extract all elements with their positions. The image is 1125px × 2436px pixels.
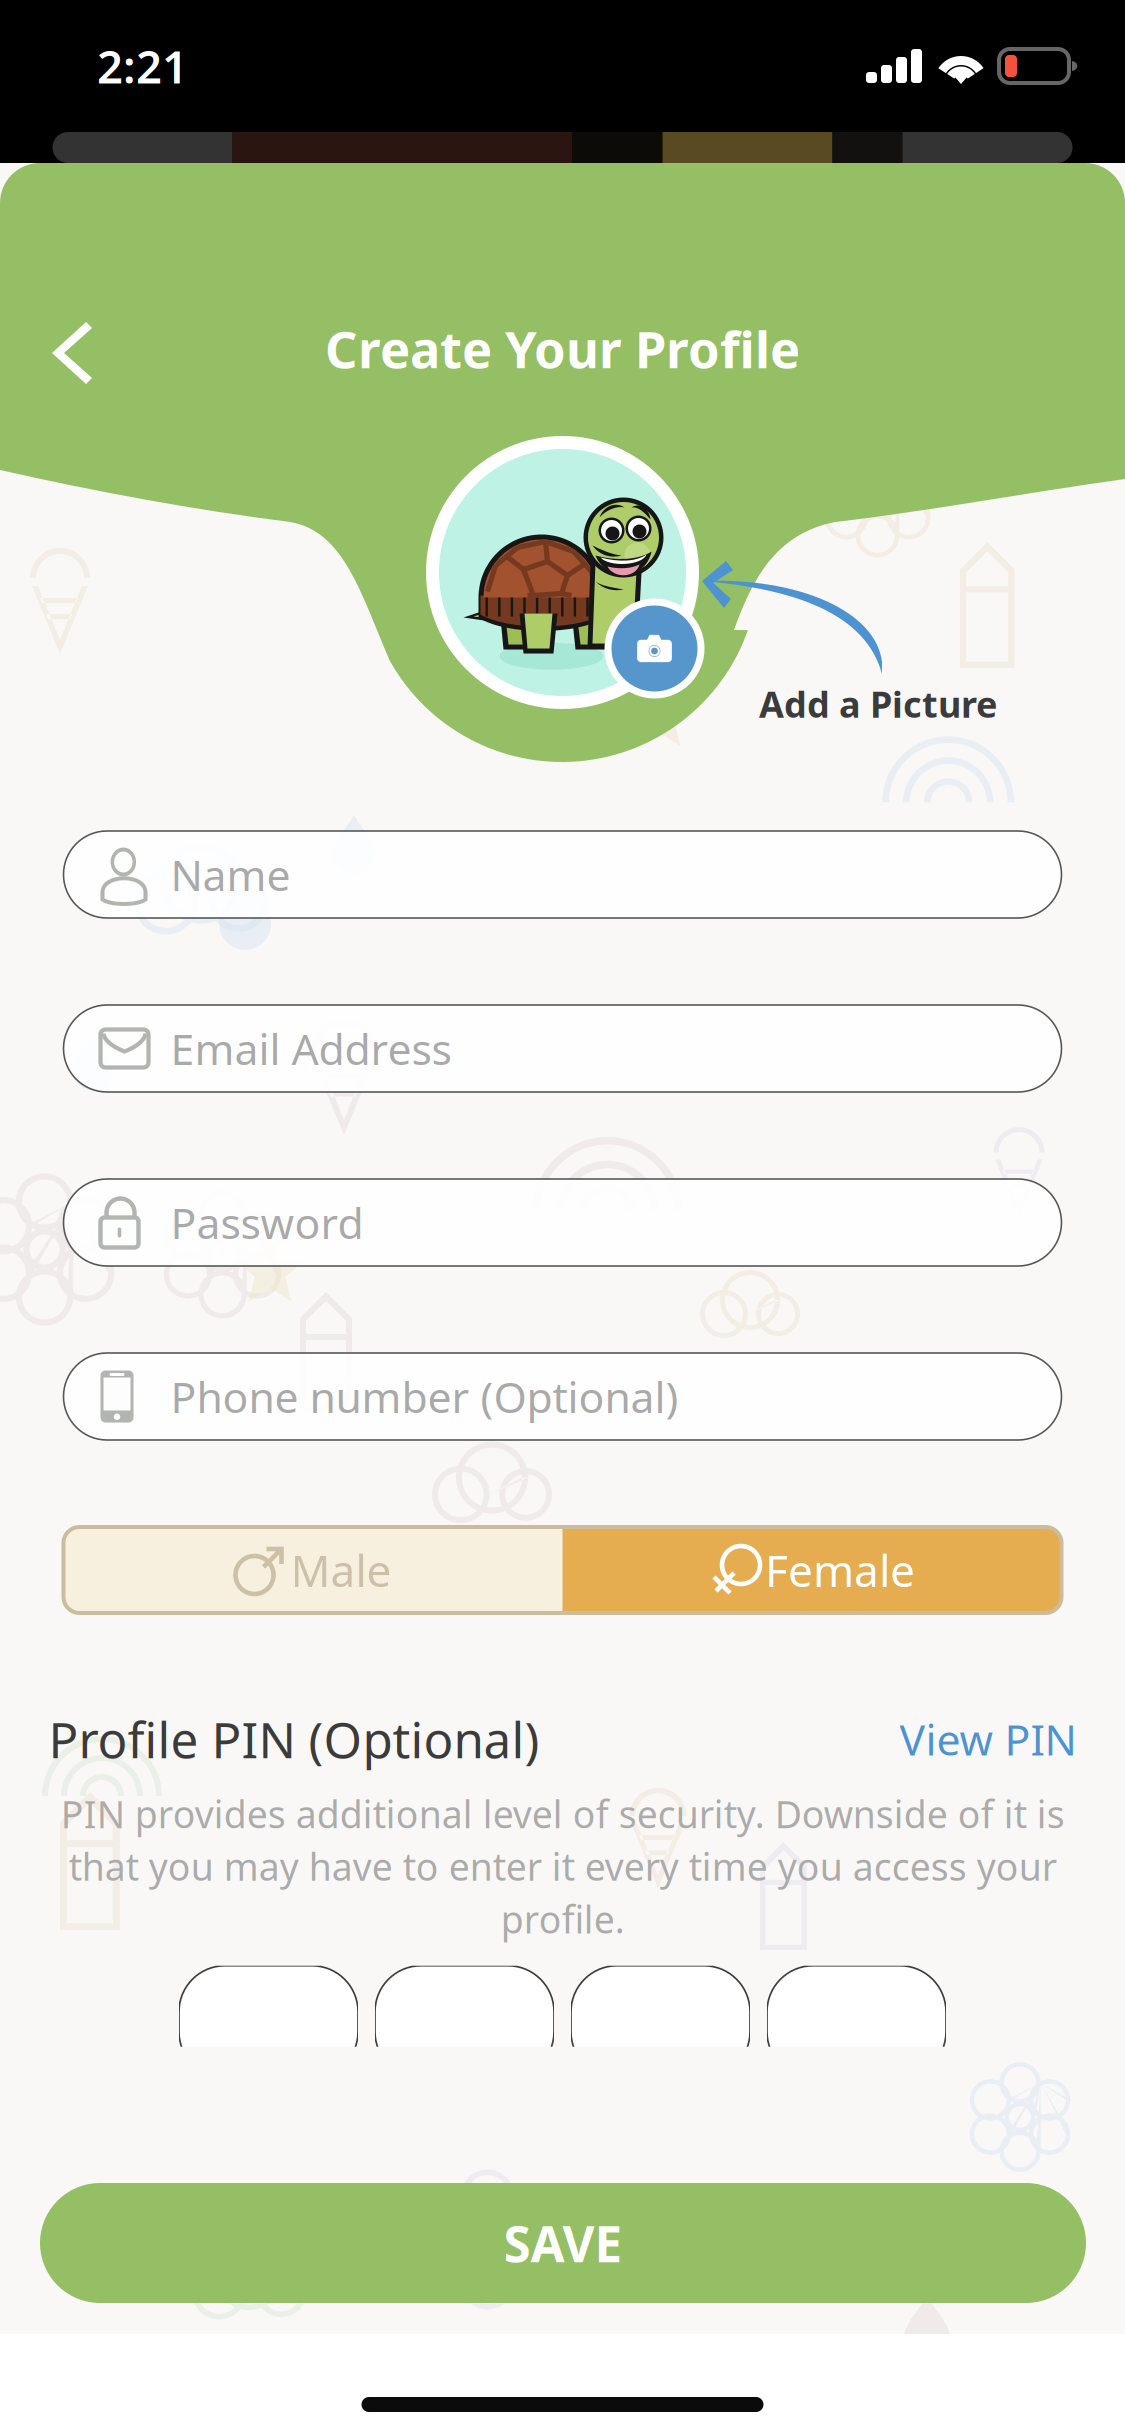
staticText: PIN provides additional level of securit… [60, 1789, 1064, 1944]
button[interactable]: PIN digit [179, 1966, 358, 2047]
staticText: Add a Picture [759, 680, 997, 728]
staticText: Email Address [170, 1020, 451, 1077]
button[interactable]: Email Address [63, 1005, 1061, 1092]
staticText: View PIN [899, 1711, 1076, 1767]
button[interactable]: View PIN [899, 1711, 1076, 1767]
button[interactable]: Male [63, 1527, 562, 1613]
button[interactable]: Name [63, 831, 1061, 918]
staticText: SAVE [503, 2210, 622, 2276]
staticText: Password [170, 1194, 363, 1251]
button[interactable]: Female [562, 1527, 1061, 1613]
staticText: Male [290, 1541, 391, 1599]
button[interactable]: Phone number (Optional) [63, 1353, 1061, 1440]
button[interactable]: PIN digit [571, 1966, 750, 2047]
staticText: Name [170, 846, 290, 903]
button[interactable]: PIN digit [767, 1966, 946, 2047]
button[interactable]: Password [63, 1179, 1061, 1266]
button[interactable]: Add a Picture [426, 436, 699, 709]
staticText: Create Your Profile [325, 315, 800, 382]
staticText: Phone number (Optional) [170, 1368, 678, 1425]
staticText: Female [765, 1541, 915, 1599]
button[interactable]: Back [25, 296, 121, 412]
button[interactable]: SAVE [40, 2183, 1086, 2303]
staticText: Profile PIN (Optional) [48, 1706, 539, 1772]
staticText: 2:21 [97, 36, 188, 96]
button[interactable]: PIN digit [375, 1966, 554, 2047]
